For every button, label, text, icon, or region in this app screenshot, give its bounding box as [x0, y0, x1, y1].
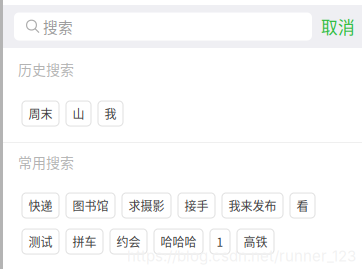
button[interactable]: 我来发布	[222, 193, 283, 218]
button[interactable]: 搜索	[14, 12, 312, 40]
button[interactable]: 图书馆	[66, 193, 115, 218]
staticText: 周末	[28, 105, 52, 122]
staticText: 快递	[28, 197, 52, 214]
button[interactable]: 求摄影	[122, 193, 171, 218]
button[interactable]: 测试	[22, 229, 59, 254]
staticText: 我	[104, 105, 116, 122]
staticText: https://blog.csdn.net/runner_123	[127, 247, 356, 265]
button[interactable]: 拼车	[66, 229, 103, 254]
button[interactable]: 取消	[316, 14, 360, 38]
button[interactable]: 我	[98, 101, 123, 126]
button[interactable]: 快递	[22, 193, 59, 218]
staticText: 测试	[28, 233, 52, 250]
staticText: 拼车	[72, 233, 96, 250]
staticText: 图书馆	[72, 197, 108, 214]
staticText: 山	[72, 105, 84, 122]
staticText: 求摄影	[128, 197, 164, 214]
button[interactable]: 高铁	[237, 229, 274, 254]
staticText: 我来发布	[228, 197, 276, 214]
staticText: 哈哈哈	[160, 233, 196, 250]
button[interactable]: 山	[66, 101, 91, 126]
staticText: 取消	[321, 14, 355, 38]
staticText: 搜索	[43, 16, 73, 37]
button[interactable]: 1	[210, 229, 230, 254]
staticText: 接手	[184, 197, 208, 214]
staticText: 看	[296, 197, 308, 214]
staticText: 历史搜索	[18, 59, 74, 79]
button[interactable]: 哈哈哈	[154, 229, 203, 254]
button[interactable]: 约会	[110, 229, 147, 254]
button[interactable]: 周末	[22, 101, 59, 126]
staticText: 高铁	[243, 233, 267, 250]
staticText: 1	[216, 233, 223, 250]
staticText: 约会	[116, 233, 140, 250]
button[interactable]: 看	[290, 193, 315, 218]
staticText: 常用搜索	[18, 152, 74, 172]
button[interactable]: 接手	[178, 193, 215, 218]
